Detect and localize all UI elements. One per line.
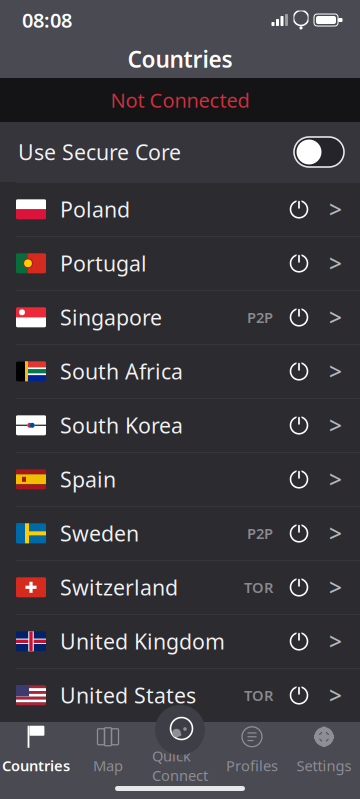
button[interactable]: Quick Connect bbox=[144, 722, 216, 778]
button[interactable]: Poland bbox=[0, 182, 360, 236]
staticText: > bbox=[329, 410, 342, 440]
staticText: TOR bbox=[244, 578, 273, 597]
staticText: Use Secure Core bbox=[18, 138, 181, 166]
staticText: > bbox=[329, 194, 342, 224]
button[interactable]: United States bbox=[0, 668, 360, 722]
button[interactable]: Sweden bbox=[0, 506, 360, 560]
button[interactable]: Map bbox=[72, 722, 144, 778]
button[interactable]: Spain bbox=[0, 452, 360, 506]
staticText: P2P bbox=[247, 308, 273, 327]
staticText: Poland bbox=[60, 195, 130, 223]
staticText: > bbox=[329, 518, 342, 548]
staticText: Map bbox=[93, 756, 123, 775]
staticText: > bbox=[329, 680, 342, 710]
staticText: Not Connected bbox=[110, 87, 249, 113]
staticText: Countries bbox=[127, 44, 232, 74]
staticText: Settings bbox=[296, 756, 351, 775]
button[interactable]: Settings bbox=[288, 722, 360, 778]
staticText: P2P bbox=[247, 524, 273, 543]
staticText: South Africa bbox=[60, 357, 183, 385]
staticText: 08:08 bbox=[22, 7, 72, 33]
staticText: > bbox=[329, 572, 342, 602]
button[interactable]: United Kingdom bbox=[0, 614, 360, 668]
staticText: Singapore bbox=[60, 303, 162, 331]
staticText: Switzerland bbox=[60, 573, 178, 601]
staticText: United Kingdom bbox=[60, 627, 225, 655]
staticText: Portugal bbox=[60, 249, 147, 277]
staticText: Spain bbox=[60, 465, 116, 493]
staticText: > bbox=[329, 464, 342, 494]
button[interactable]: Profiles bbox=[216, 722, 288, 778]
staticText: > bbox=[329, 356, 342, 386]
button[interactable]: Switzerland bbox=[0, 560, 360, 614]
staticText: Profiles bbox=[226, 756, 278, 775]
staticText: Sweden bbox=[60, 519, 139, 547]
button[interactable]: Countries bbox=[0, 722, 72, 778]
staticText: > bbox=[329, 302, 342, 332]
button[interactable]: Portugal bbox=[0, 236, 360, 290]
staticText: TOR bbox=[244, 686, 273, 705]
staticText: United States bbox=[60, 681, 196, 709]
staticText: Quick Connect bbox=[152, 746, 208, 785]
staticText: > bbox=[329, 626, 342, 656]
button[interactable]: Singapore bbox=[0, 290, 360, 344]
button[interactable]: South Korea bbox=[0, 398, 360, 452]
staticText: Countries bbox=[2, 756, 70, 775]
staticText: > bbox=[329, 248, 342, 278]
button[interactable]: Use Secure Core bbox=[294, 137, 344, 167]
staticText: South Korea bbox=[60, 411, 183, 439]
button[interactable]: South Africa bbox=[0, 344, 360, 398]
